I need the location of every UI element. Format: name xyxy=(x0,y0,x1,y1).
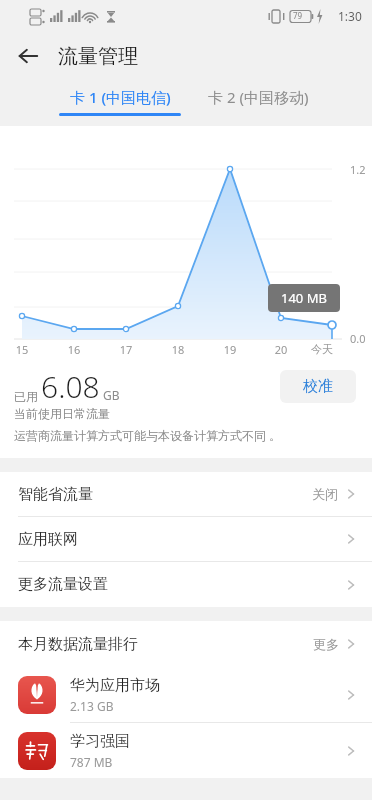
staticText: 1:30 xyxy=(338,8,362,24)
staticText: 20 xyxy=(269,342,293,357)
staticText: 140 MB xyxy=(281,289,327,307)
staticText: 1.2 xyxy=(350,162,366,177)
staticText: 流量管理 xyxy=(58,44,138,69)
staticText: 今天 xyxy=(310,342,334,356)
staticText: 18 xyxy=(166,342,190,357)
staticText: 2.13 GB xyxy=(70,698,114,714)
staticText: 79 xyxy=(293,10,303,21)
staticText: 19 xyxy=(218,342,242,357)
staticText: 本月数据流量排行 xyxy=(18,635,138,654)
staticText: 更多 xyxy=(313,636,339,652)
staticText: 关闭 xyxy=(312,486,338,502)
button[interactable]: 学习强国 xyxy=(0,723,372,778)
staticText: 0.0 xyxy=(350,331,366,346)
button[interactable]: Back xyxy=(8,36,48,76)
staticText: 学习强国 xyxy=(70,732,130,751)
staticText: 6.08 xyxy=(41,366,100,407)
button[interactable]: 本月数据流量排行 xyxy=(0,621,372,667)
staticText: 已用 xyxy=(14,389,38,404)
staticText: 运营商流量计算方式可能与本设备计算方式不同 。 xyxy=(14,427,282,443)
staticText: 校准 xyxy=(303,377,333,396)
staticText: 卡 1 (中国电信) xyxy=(70,87,171,107)
staticText: 787 MB xyxy=(70,754,113,770)
button[interactable]: 应用联网 xyxy=(0,517,372,562)
button[interactable]: 卡 1 (中国电信) xyxy=(56,80,184,125)
staticText: GB xyxy=(103,387,120,403)
button[interactable]: 更多流量设置 xyxy=(0,562,372,607)
staticText: 更多流量设置 xyxy=(18,575,108,594)
staticText: 16 xyxy=(62,342,86,357)
staticText: 卡 2 (中国移动) xyxy=(208,87,309,107)
staticText: 17 xyxy=(114,342,138,357)
staticText: 15 xyxy=(10,342,34,357)
button[interactable]: 校准 xyxy=(280,370,356,403)
button[interactable]: 智能省流量 xyxy=(0,472,372,517)
button[interactable]: 卡 2 (中国移动) xyxy=(198,80,318,125)
staticText: 智能省流量 xyxy=(18,485,93,504)
button[interactable]: 华为应用市场 xyxy=(0,667,372,723)
staticText: 应用联网 xyxy=(18,530,78,549)
staticText: 当前使用日常流量 xyxy=(14,406,110,421)
staticText: 华为应用市场 xyxy=(70,676,160,695)
